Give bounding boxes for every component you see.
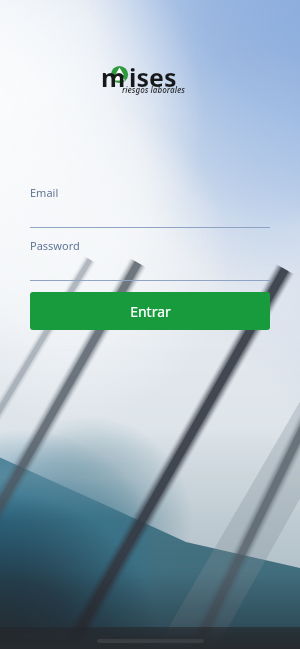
button[interactable]: Password bbox=[30, 238, 270, 281]
staticText: m bbox=[101, 60, 126, 94]
staticText: ises bbox=[129, 60, 177, 94]
button[interactable]: Entrar bbox=[30, 292, 270, 330]
button[interactable]: Email bbox=[30, 185, 270, 228]
staticText: Entrar bbox=[130, 302, 171, 321]
staticText: Password bbox=[30, 238, 80, 253]
staticText: Email bbox=[30, 185, 59, 200]
staticText: riesgos laborales bbox=[122, 84, 185, 95]
